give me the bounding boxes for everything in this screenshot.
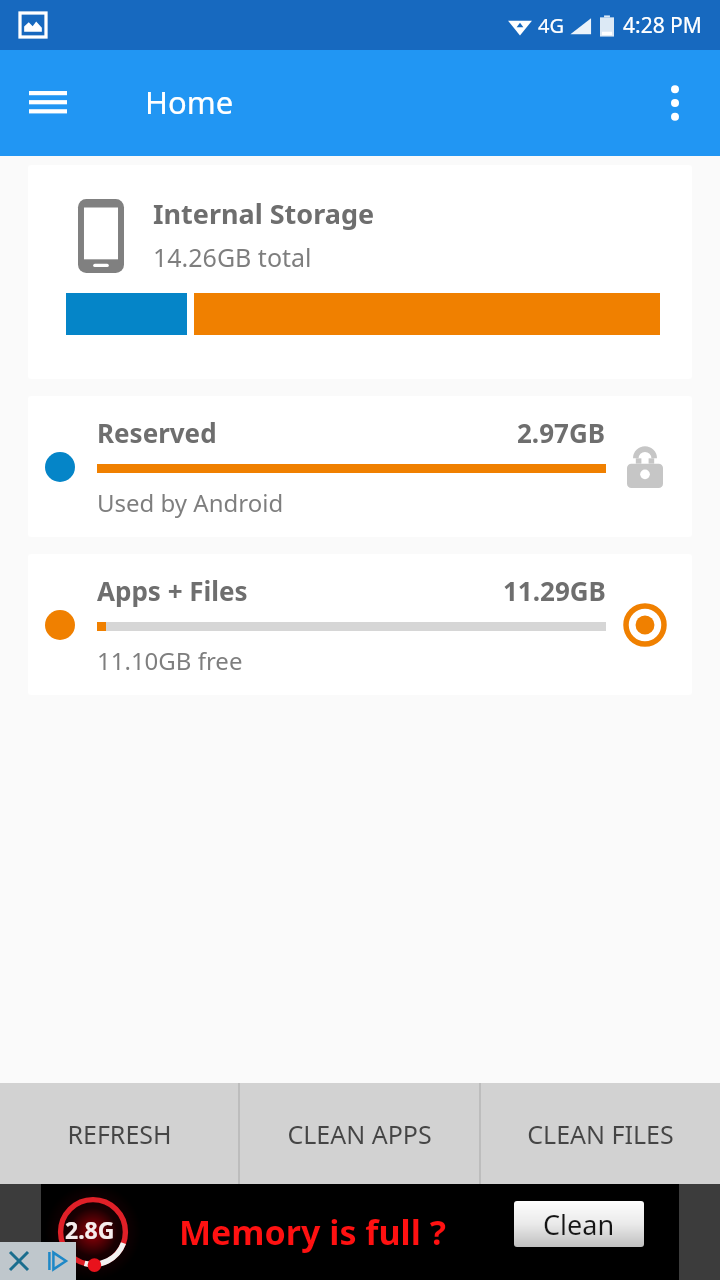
button[interactable]: Apps + Files <box>28 554 692 695</box>
staticText: REFRESH <box>67 1117 172 1151</box>
button[interactable]: Close ad <box>0 1242 38 1280</box>
staticText: Used by Android <box>97 486 284 519</box>
button[interactable]: Clean <box>514 1201 644 1247</box>
button[interactable]: CLEAN APPS <box>240 1083 479 1184</box>
button[interactable]: Ad information <box>38 1242 76 1280</box>
staticText: 11.29GB <box>503 573 606 608</box>
button[interactable]: More options <box>644 72 706 134</box>
button[interactable]: Locked <box>616 438 674 496</box>
button[interactable]: CLEAN FILES <box>481 1083 720 1184</box>
button[interactable]: 2.8G <box>41 1184 679 1280</box>
staticText: 2.8G <box>65 1214 115 1245</box>
staticText: 2.97GB <box>517 415 606 450</box>
staticText: Home <box>145 81 234 123</box>
staticText: 11.10GB free <box>97 644 243 677</box>
button[interactable]: REFRESH <box>0 1083 238 1184</box>
staticText: Internal Storage <box>153 195 375 232</box>
staticText: CLEAN FILES <box>527 1117 674 1151</box>
staticText: Memory is full ? <box>179 1209 446 1255</box>
button[interactable]: Internal Storage <box>28 165 692 379</box>
staticText: Apps + Files <box>97 573 248 608</box>
button[interactable]: Selected <box>616 596 674 654</box>
staticText: CLEAN APPS <box>287 1117 432 1151</box>
staticText: 4G <box>538 12 564 39</box>
staticText: 4:28 PM <box>623 11 702 40</box>
staticText: 14.26GB total <box>153 240 312 274</box>
staticText: Reserved <box>97 415 217 450</box>
button[interactable]: Reserved <box>28 396 692 537</box>
button[interactable]: Open navigation drawer <box>16 71 80 135</box>
staticText: Clean <box>543 1206 615 1243</box>
